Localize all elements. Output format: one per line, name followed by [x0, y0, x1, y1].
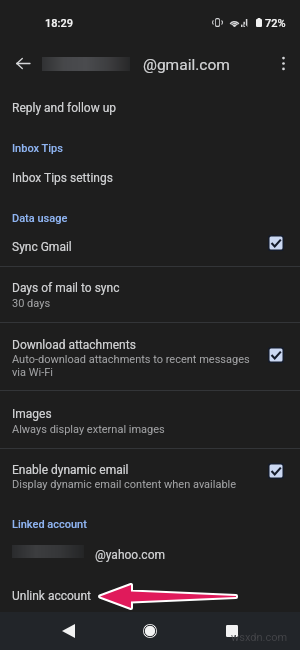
- staticText: Linked account: [12, 518, 87, 531]
- button[interactable]: [0, 573, 300, 612]
- button[interactable]: [0, 533, 300, 572]
- staticText: Display dynamic email content when avail…: [12, 478, 237, 491]
- button[interactable]: Navigate up: [5, 46, 40, 81]
- button[interactable]: [0, 322, 300, 390]
- staticText: Days of mail to sync: [12, 281, 120, 295]
- staticText: Unlink account: [12, 589, 92, 603]
- button[interactable]: [0, 228, 300, 266]
- staticText: Inbox Tips settings: [12, 171, 113, 185]
- button[interactable]: Recent apps: [212, 612, 252, 650]
- button[interactable]: [0, 267, 300, 321]
- staticText: wsxdn.com: [231, 631, 288, 644]
- staticText: Sync Gmail: [12, 240, 72, 254]
- button[interactable]: Home: [130, 612, 170, 650]
- staticText: @gmail.com: [143, 56, 230, 74]
- staticText: Auto-download attachments to recent mess…: [12, 353, 260, 379]
- staticText: Images: [12, 407, 52, 421]
- staticText: 30 days: [12, 297, 51, 310]
- staticText: 18:29: [45, 17, 73, 30]
- staticText: Download attachments: [12, 338, 136, 352]
- button[interactable]: [0, 391, 300, 447]
- staticText: Always display external images: [12, 423, 165, 436]
- button[interactable]: More options: [266, 46, 300, 81]
- staticText: Data usage: [12, 212, 68, 225]
- button[interactable]: [0, 160, 300, 196]
- button[interactable]: Back: [48, 612, 88, 650]
- staticText: Inbox Tips: [12, 142, 63, 155]
- staticText: Reply and follow up: [12, 101, 117, 115]
- button[interactable]: [0, 90, 300, 130]
- staticText: Enable dynamic email: [12, 463, 129, 477]
- staticText: 72%: [265, 17, 286, 30]
- button[interactable]: [0, 448, 300, 500]
- staticText: @yahoo.com: [95, 548, 166, 562]
